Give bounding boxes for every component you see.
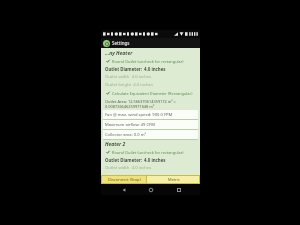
staticText: Outlet width 4.0 inches xyxy=(105,165,152,171)
button[interactable]: Fan @ max. wind speed: 900.0 FPM xyxy=(103,110,198,119)
button[interactable]: Home xyxy=(145,184,156,195)
staticText: Maximum airflow: 49 CFM xyxy=(105,122,155,128)
staticText: Fan @ max. wind speed: 900.0 FPM xyxy=(105,112,173,118)
button[interactable]: Collector area: 0.0 m² xyxy=(103,130,198,139)
staticText: Heater 2 xyxy=(105,141,126,148)
staticText: Outlet Diameter: xyxy=(105,66,144,72)
staticText: 4.0 inches xyxy=(144,66,166,72)
staticText: 4.0 inches xyxy=(144,157,166,163)
staticText: Collector area: 0.0 m² xyxy=(105,132,146,138)
button[interactable]: Round Outlet (uncheck for rectangular) xyxy=(103,57,198,65)
button[interactable]: Calculate Equivalent Diameter (Rectangul… xyxy=(103,89,198,97)
button[interactable]: Round Outlet (uncheck for rectangular) xyxy=(103,148,198,156)
button[interactable]: App icon xyxy=(103,40,110,47)
staticText: Metric xyxy=(168,177,180,182)
staticText: Round Outlet (uncheck for rectangular) xyxy=(112,150,184,155)
button[interactable]: Outlet width 4.0 inches xyxy=(103,73,198,81)
button[interactable]: Outlet Diameter: xyxy=(103,156,198,164)
button[interactable]: Outlet Diameter: xyxy=(103,65,198,73)
staticText: Calculate Equivalent Diameter (Rectangul… xyxy=(112,91,193,96)
button[interactable]: Recent apps xyxy=(173,184,184,195)
button[interactable]: Outlet width 4.0 inches xyxy=(103,164,198,172)
staticText: Outlet Diameter: xyxy=(105,157,144,163)
staticText: …ny Heater xyxy=(105,50,133,57)
staticText: Outlet Area: 12.566370614359172 in² = xyxy=(105,99,176,104)
button[interactable]: Outlet height 4.0 inches xyxy=(103,81,198,89)
staticText: Outlet height 4.0 inches xyxy=(105,82,153,88)
button[interactable]: Disconnect (Stop) xyxy=(101,175,147,184)
button[interactable]: Back xyxy=(118,184,129,195)
button[interactable]: Maximum airflow: 49 CFM xyxy=(103,120,198,129)
button[interactable]: Metric xyxy=(147,175,200,184)
staticText: 0.008726646259971648 m² xyxy=(105,104,155,109)
staticText: Settings xyxy=(112,40,130,46)
staticText: Round Outlet (uncheck for rectangular) xyxy=(112,59,184,64)
staticText: Outlet width 4.0 inches xyxy=(105,74,152,80)
staticText: Disconnect (Stop) xyxy=(108,177,141,182)
